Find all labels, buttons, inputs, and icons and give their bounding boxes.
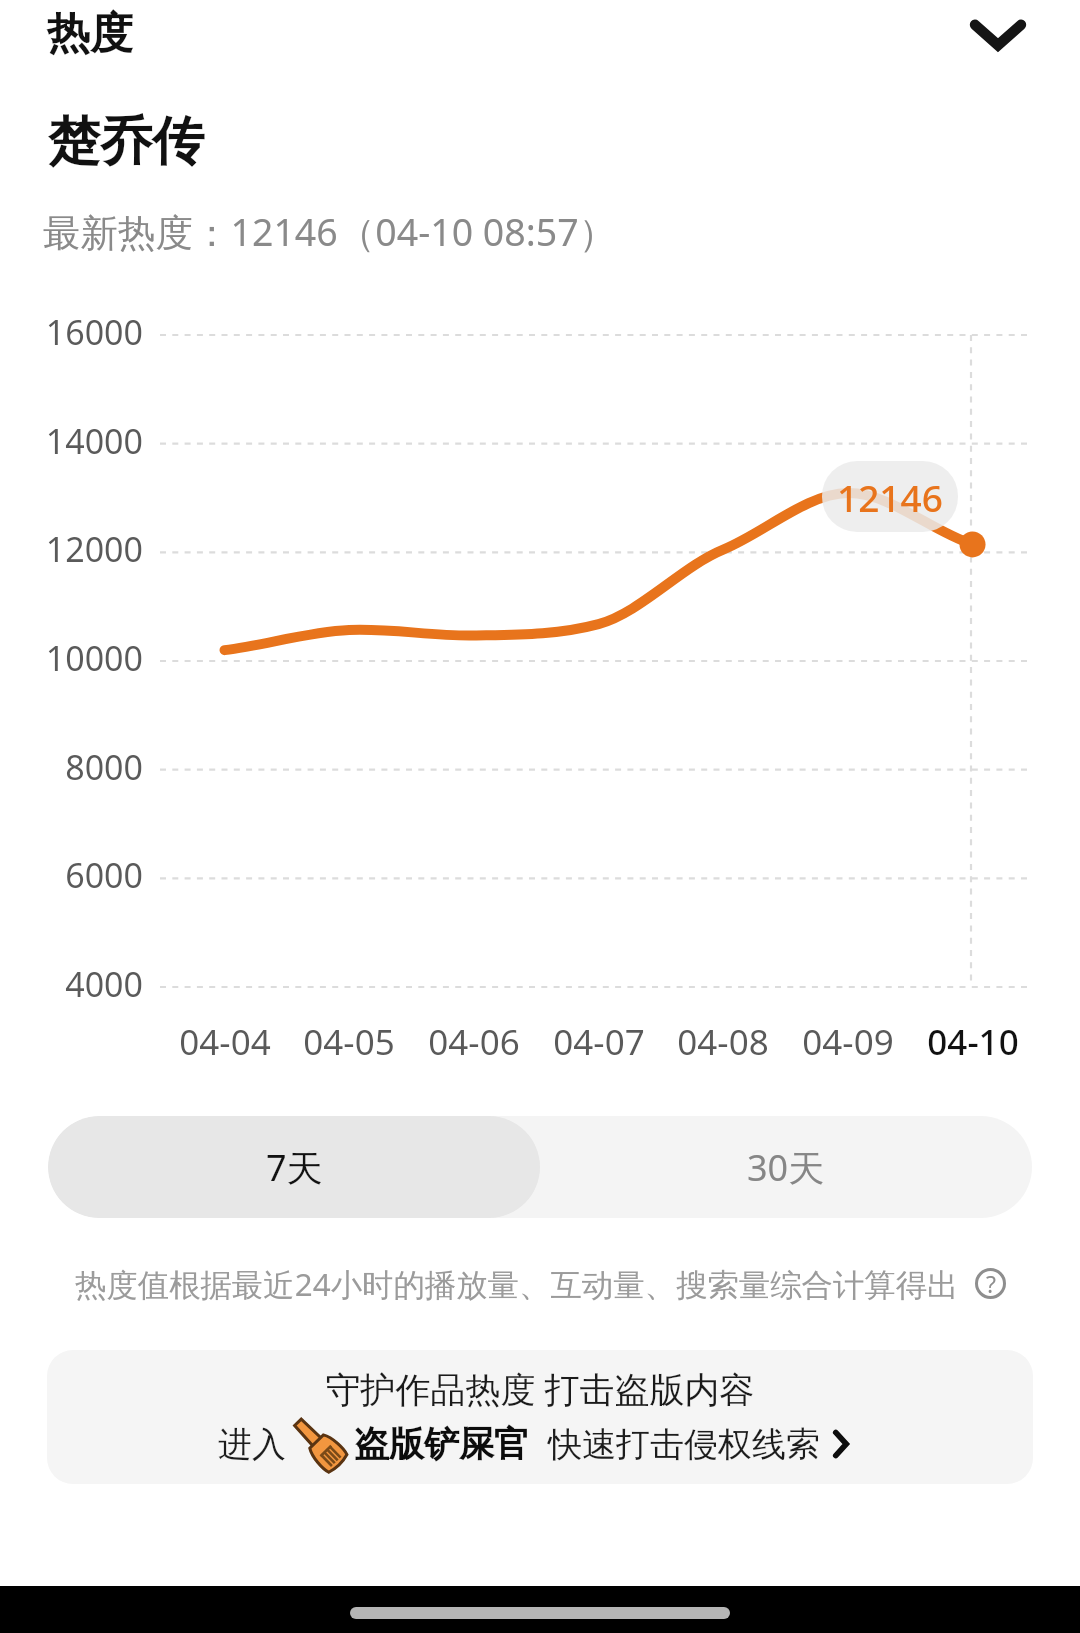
button[interactable]: Collapse [948,0,1048,70]
button[interactable]: Help [975,1268,1006,1299]
staticText: ? [986,1268,996,1299]
button[interactable]: 30天 [540,1116,1032,1218]
staticText: 04-09 [788,1018,908,1066]
staticText: 守护作品热度 打击盗版内容 [47,1365,1033,1413]
staticText: 楚乔传 [48,109,204,175]
staticText: 10000 [4,635,143,681]
button[interactable]: 7天 [48,1116,540,1218]
staticText: 7天 [266,1143,323,1192]
staticText: 12000 [4,526,143,572]
staticText: 04-05 [289,1018,409,1066]
staticText: 进入 [218,1423,286,1466]
staticText: 16000 [4,309,143,355]
staticText: 04-07 [539,1018,659,1066]
staticText: 4000 [4,961,143,1007]
staticText: 04-04 [165,1018,285,1066]
staticText: 盗版铲屎官 [354,1422,529,1466]
staticText: 6000 [4,852,143,898]
staticText: 热度 [47,7,133,61]
staticText: 30天 [747,1143,825,1192]
staticText: 14000 [4,418,143,464]
staticText: 8000 [4,744,143,790]
staticText: 04-10 [913,1018,1033,1066]
staticText: 12146 [837,472,943,522]
button[interactable]: 守护作品热度 打击盗版内容 [47,1350,1033,1484]
staticText: 快速打击侵权线索 [548,1423,820,1466]
staticText: 最新热度：12146（04-10 08:57） [43,206,617,257]
staticText: 热度值根据最近24小时的播放量、互动量、搜索量综合计算得出 [75,1262,959,1305]
staticText: 04-06 [414,1018,534,1066]
staticText: 04-08 [663,1018,783,1066]
